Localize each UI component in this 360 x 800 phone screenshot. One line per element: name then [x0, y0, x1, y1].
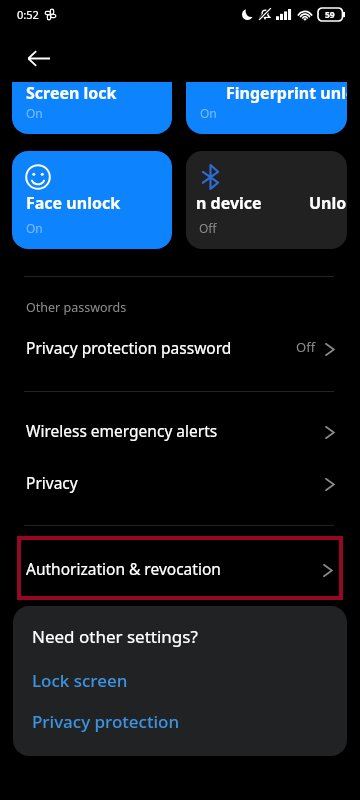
button[interactable]: Privacy: [0, 456, 360, 508]
staticText: Face unlock: [26, 192, 121, 214]
staticText: On: [26, 105, 43, 121]
button[interactable]: Authorization & revocation: [21, 540, 339, 596]
button[interactable]: Privacy protection: [32, 710, 180, 733]
button[interactable]: Wireless emergency alerts: [0, 404, 360, 456]
staticText: Screen lock: [26, 82, 117, 104]
staticText: Authorization & revocation: [26, 558, 221, 579]
staticText: Off: [296, 338, 316, 356]
staticText: 59: [325, 9, 335, 21]
staticText: Other passwords: [26, 299, 127, 316]
button[interactable]: Privacy protection password: [0, 321, 360, 373]
button[interactable]: Fingerprint unlock: [186, 82, 347, 134]
button[interactable]: n device: [186, 151, 347, 249]
staticText: Unlock: [309, 192, 347, 214]
staticText: On: [26, 220, 43, 236]
staticText: Off: [199, 220, 217, 236]
button[interactable]: Screen lock: [12, 82, 172, 134]
staticText: Need other settings?: [32, 625, 198, 648]
staticText: Privacy: [26, 472, 78, 493]
button[interactable]: Back: [18, 38, 58, 78]
staticText: Fingerprint unlock: [226, 82, 347, 104]
staticText: 0:52: [17, 7, 39, 22]
staticText: Wireless emergency alerts: [26, 420, 218, 441]
staticText: n device: [196, 192, 262, 214]
button[interactable]: Lock screen: [32, 669, 128, 692]
button[interactable]: Face unlock: [12, 151, 172, 249]
staticText: Privacy protection password: [26, 337, 232, 358]
staticText: On: [200, 105, 217, 121]
